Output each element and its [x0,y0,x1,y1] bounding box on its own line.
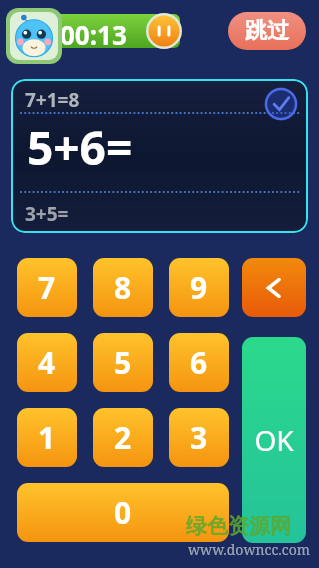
button[interactable]: OK [242,337,306,543]
button[interactable]: Backspace [242,258,306,317]
staticText: 3 [190,417,208,458]
button[interactable]: Correct [264,87,298,121]
button[interactable]: 4 [17,333,77,392]
button[interactable]: 3 [169,408,229,467]
staticText: 7+1=8 [25,87,80,113]
button[interactable]: 0 [17,483,229,542]
button[interactable]: 7 [17,258,77,317]
staticText: 0 [114,492,132,533]
button[interactable]: 5 [93,333,153,392]
button[interactable]: 7+1=8 [11,79,308,233]
staticText: 9 [190,267,208,308]
staticText: 5 [114,342,132,383]
staticText: OK [254,421,294,459]
staticText: www.downcc.com [188,540,310,559]
staticText: 00:13 [60,17,127,48]
staticText: 1 [38,417,56,458]
staticText: 3+5= [25,201,69,227]
staticText: 跳过 [245,17,289,45]
staticText: 绿色资源网 [186,513,291,539]
staticText: 4 [38,342,56,383]
button[interactable]: 1 [17,408,77,467]
button[interactable]: 8 [93,258,153,317]
button[interactable]: 2 [93,408,153,467]
button[interactable] [6,8,62,64]
button[interactable]: 6 [169,333,229,392]
staticText: 2 [114,417,132,458]
button[interactable]: 00:13 [40,14,180,48]
button[interactable]: 跳过 [228,12,306,50]
button[interactable]: Pause [146,13,182,49]
button[interactable]: 9 [169,258,229,317]
staticText: 6 [190,342,208,383]
staticText: 8 [114,267,132,308]
staticText: 7 [38,267,56,308]
staticText: 5+6= [27,116,133,179]
